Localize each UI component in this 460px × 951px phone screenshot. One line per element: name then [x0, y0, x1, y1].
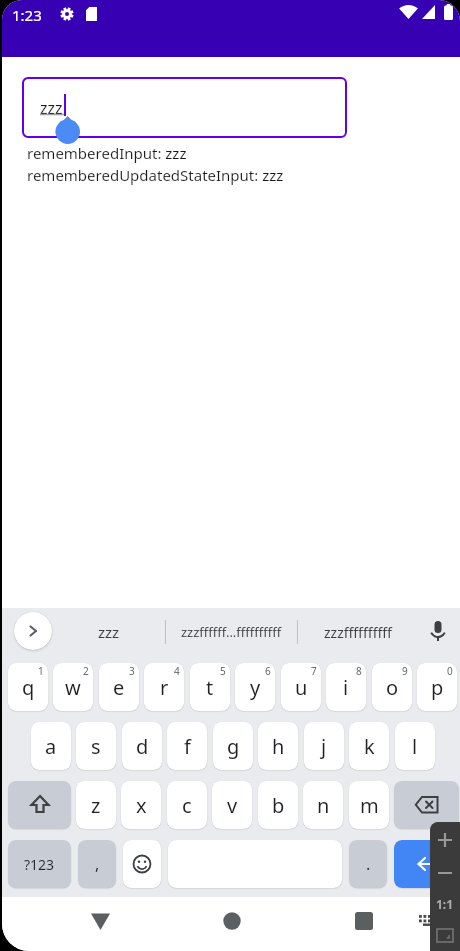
button[interactable]: t [190, 663, 230, 711]
staticText: 1 [38, 664, 44, 678]
staticText: . [366, 853, 371, 875]
staticText: 3 [129, 664, 135, 678]
button[interactable]: f [167, 722, 207, 770]
button[interactable]: h [258, 722, 298, 770]
button[interactable]: ?123 [8, 840, 71, 888]
button[interactable]: m [349, 781, 389, 829]
staticText: h [272, 733, 285, 760]
button[interactable]: zzz [22, 77, 347, 138]
button[interactable]: j [304, 722, 344, 770]
staticText: rememberedInput: zzz [27, 143, 187, 163]
staticText: x [136, 792, 147, 819]
button[interactable] [342, 897, 386, 945]
staticText: zzz [40, 97, 63, 119]
staticText: 2 [83, 664, 89, 678]
button[interactable] [394, 840, 459, 888]
staticText: r [160, 674, 169, 701]
button[interactable] [8, 781, 71, 829]
staticText: 5 [220, 664, 226, 678]
button[interactable]: s [76, 722, 116, 770]
button[interactable]: k [349, 722, 389, 770]
staticText: 1:1 [436, 896, 454, 912]
staticText: 9 [402, 664, 408, 678]
staticText: u [295, 674, 308, 701]
staticText: a [45, 733, 57, 760]
staticText: q [22, 674, 35, 701]
staticText: c [182, 792, 192, 819]
button[interactable]: e [99, 663, 139, 711]
button[interactable] [78, 897, 122, 945]
button[interactable] [428, 621, 448, 643]
staticText: i [343, 674, 349, 701]
button[interactable]: u [281, 663, 321, 711]
button[interactable]: b [258, 781, 298, 829]
button[interactable]: 1:1 [430, 896, 460, 912]
staticText: 7 [311, 664, 317, 678]
button[interactable]: y [235, 663, 275, 711]
staticText: o [386, 674, 399, 701]
staticText: n [317, 792, 330, 819]
button[interactable]: zzzffffff...ffffffffff [166, 608, 297, 656]
button[interactable] [419, 912, 433, 930]
staticText: rememberedUpdatedStateInput: zzz [27, 165, 284, 185]
button[interactable]: o [372, 663, 412, 711]
button[interactable] [210, 897, 254, 945]
button[interactable]: x [121, 781, 161, 829]
button[interactable]: i [326, 663, 366, 711]
button[interactable]: l [395, 722, 435, 770]
button[interactable]: d [122, 722, 162, 770]
staticText: 0 [447, 664, 453, 678]
staticText: k [364, 733, 375, 760]
staticText: zzz [98, 622, 120, 642]
staticText: e [113, 674, 125, 701]
button[interactable] [438, 833, 452, 847]
button[interactable]: p [417, 663, 457, 711]
staticText: w [65, 674, 81, 701]
staticText: f [184, 733, 191, 760]
staticText: y [250, 674, 261, 701]
button[interactable]: w [53, 663, 93, 711]
staticText: p [431, 674, 444, 701]
button[interactable]: z [76, 781, 116, 829]
button[interactable]: zzz [52, 608, 165, 656]
staticText: l [412, 733, 418, 760]
button[interactable]: . [349, 840, 387, 888]
button[interactable] [14, 612, 52, 650]
staticText: t [206, 674, 214, 701]
button[interactable]: , [78, 840, 116, 888]
button[interactable]: n [303, 781, 343, 829]
staticText: m [360, 792, 379, 819]
staticText: d [136, 733, 149, 760]
button[interactable] [437, 929, 453, 942]
staticText: g [227, 733, 240, 760]
button[interactable]: a [31, 722, 71, 770]
button[interactable]: g [213, 722, 253, 770]
staticText: , [95, 853, 100, 875]
button[interactable] [438, 871, 452, 875]
button[interactable] [394, 781, 459, 829]
button[interactable]: c [167, 781, 207, 829]
staticText: zzzffffff...ffffffffff [181, 623, 282, 641]
button[interactable]: v [212, 781, 252, 829]
button[interactable]: r [144, 663, 184, 711]
button[interactable]: zzzffffffffff [298, 608, 417, 656]
staticText: 1:23 [12, 5, 42, 25]
staticText: s [91, 733, 101, 760]
staticText: z [91, 792, 101, 819]
staticText: b [272, 792, 285, 819]
staticText: j [321, 733, 327, 760]
staticText: ?123 [24, 855, 55, 874]
staticText: 8 [356, 664, 362, 678]
staticText: 6 [265, 664, 271, 678]
staticText: v [227, 792, 238, 819]
button[interactable] [123, 840, 161, 888]
button[interactable]: q [8, 663, 48, 711]
staticText: 4 [174, 664, 180, 678]
staticText: zzzffffffffff [324, 623, 392, 642]
